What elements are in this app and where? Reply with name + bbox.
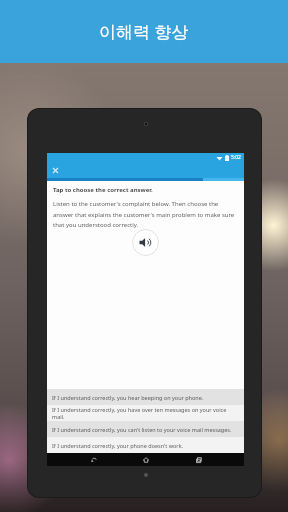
button[interactable]: If I understand correctly, you have over… xyxy=(47,405,244,421)
button[interactable]: If I understand correctly, you can't lis… xyxy=(47,421,244,437)
staticText: 이해력 향상 xyxy=(99,20,189,43)
staticText: If I understand correctly, your phone do… xyxy=(52,442,184,449)
staticText: If I understand correctly, you hear beep… xyxy=(52,394,204,401)
staticText: If I understand correctly, you can't lis… xyxy=(52,426,232,433)
button[interactable]: Play audio xyxy=(132,229,159,256)
button[interactable]: If I understand correctly, you hear beep… xyxy=(47,389,244,405)
button[interactable]: If I understand correctly, your phone do… xyxy=(47,437,244,453)
button[interactable]: Back xyxy=(87,453,100,466)
button[interactable]: Close xyxy=(50,165,60,175)
staticText: If I understand correctly, you have over… xyxy=(52,406,239,420)
button[interactable]: Home xyxy=(139,453,152,466)
staticText: Listen to the customer's complaint below… xyxy=(53,200,238,229)
staticText: 5:02 xyxy=(231,154,241,161)
button[interactable]: Recent apps xyxy=(192,453,205,466)
staticText: Tap to choose the correct answer. xyxy=(53,186,153,194)
